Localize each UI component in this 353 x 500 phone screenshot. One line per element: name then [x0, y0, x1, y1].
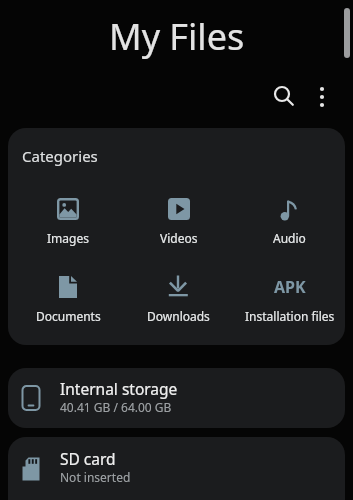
staticText: Audio: [273, 230, 306, 246]
button[interactable]: Audio: [234, 197, 345, 246]
staticText: APK: [274, 276, 306, 298]
button[interactable]: Videos: [123, 197, 234, 246]
staticText: Internal storage: [60, 378, 178, 399]
staticText: Installation files: [245, 308, 335, 324]
staticText: Not inserted: [60, 469, 131, 485]
staticText: Documents: [36, 308, 101, 324]
staticText: SD card: [60, 448, 116, 469]
staticText: Categories: [22, 146, 98, 166]
button[interactable]: Images: [13, 197, 123, 246]
staticText: 40.41 GB / 64.00 GB: [60, 399, 172, 415]
button[interactable]: SD card: [8, 437, 345, 500]
button[interactable]: Internal storage: [8, 368, 345, 428]
button[interactable]: APK: [234, 275, 345, 324]
button[interactable]: [268, 80, 300, 112]
button[interactable]: Downloads: [123, 275, 234, 324]
staticText: Videos: [160, 230, 198, 246]
staticText: Downloads: [147, 308, 210, 324]
staticText: Images: [47, 230, 89, 246]
staticText: My Files: [109, 12, 245, 61]
button[interactable]: [306, 80, 338, 112]
button[interactable]: Documents: [13, 275, 123, 324]
